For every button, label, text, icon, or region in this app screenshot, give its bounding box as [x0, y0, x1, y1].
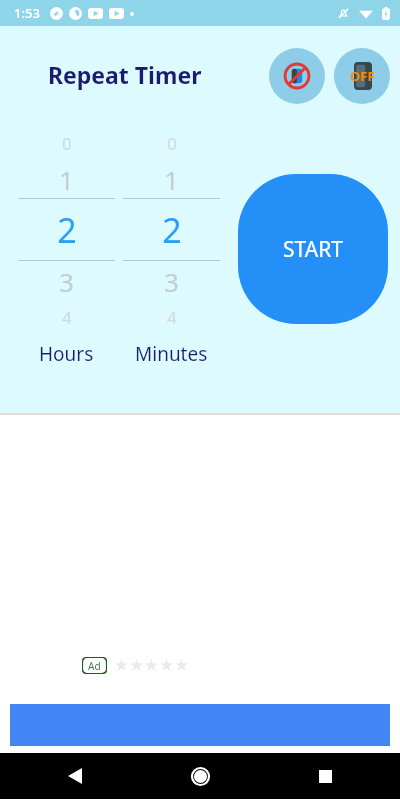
staticText: 1:53: [14, 4, 40, 22]
button[interactable]: Recent apps: [310, 761, 340, 791]
staticText: Hours: [39, 341, 94, 367]
button[interactable]: 0: [14, 126, 119, 367]
staticText: OFF: [350, 67, 375, 85]
button[interactable]: START: [238, 174, 388, 324]
staticText: 2: [162, 207, 182, 253]
staticText: 3: [59, 264, 74, 299]
button[interactable]: 0: [119, 126, 224, 367]
staticText: 2: [57, 207, 77, 253]
staticText: 3: [164, 264, 179, 299]
button[interactable]: Mute vibration: [269, 48, 325, 104]
staticText: 1: [164, 162, 179, 197]
button[interactable]: Home: [185, 761, 215, 791]
staticText: 0: [167, 132, 177, 155]
staticText: 1: [59, 162, 74, 197]
staticText: START: [283, 235, 343, 264]
staticText: Repeat Timer: [48, 59, 202, 90]
staticText: Minutes: [135, 341, 208, 367]
button[interactable]: Back: [60, 761, 90, 791]
staticText: 4: [62, 306, 72, 329]
staticText: 0: [62, 132, 72, 155]
staticText: Ad: [88, 659, 101, 673]
button[interactable]: Screen off: [334, 48, 390, 104]
staticText: 4: [167, 306, 177, 329]
